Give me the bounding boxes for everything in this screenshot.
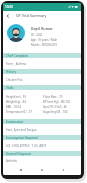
staticText: LDL CHOLESTROL, T-3G, ANTI — [6, 144, 46, 148]
button[interactable]: Back — [3, 11, 12, 20]
button[interactable]: Back — [59, 166, 67, 174]
staticText: BP (mm Hg) - 80/120 — [43, 100, 71, 104]
staticText: Face, Eyes and Tongue — [6, 128, 37, 132]
staticText: 10:30 — [5, 5, 13, 9]
staticText: GP Visit Summary — [16, 13, 47, 18]
staticText: Vitals — [6, 86, 14, 90]
staticText: Age : 35 years / Male — [31, 38, 58, 42]
button[interactable]: Chief Complaint — [3, 53, 81, 58]
staticText: Mobile : 9874563210 — [31, 43, 58, 47]
staticText: Sugar(mg/dl) - 100 — [43, 110, 68, 114]
button[interactable]: Investigation Required — [3, 135, 81, 140]
button[interactable]: Examination — [3, 119, 81, 124]
staticText: Weight(kg) - 84 — [6, 100, 26, 104]
staticText: General Diagnosis — [6, 152, 32, 156]
staticText: Pulse Rate - 70 — [43, 95, 63, 99]
button[interactable]: Home — [38, 166, 46, 174]
button[interactable]: History — [3, 69, 81, 74]
button[interactable]: Vitals — [3, 85, 81, 90]
staticText: Fever , Asthma — [6, 62, 27, 66]
staticText: History — [6, 70, 16, 74]
staticText: Chicken Pox — [6, 78, 23, 82]
staticText: Arthritis — [6, 159, 17, 163]
staticText: Spo2 (% 0 Vol) - 46 — [43, 105, 67, 109]
button[interactable]: General Diagnosis — [3, 151, 81, 156]
staticText: Investigation Required — [6, 136, 38, 140]
staticText: ID : 2342 — [31, 33, 43, 37]
staticText: Height(cm) - 55 — [6, 95, 27, 99]
button[interactable]: Recents — [17, 166, 25, 174]
staticText: BMI - 18.54 — [6, 105, 21, 109]
staticText: Temperature(C) - 37 — [6, 110, 32, 114]
staticText: Chief Complaint — [6, 54, 29, 58]
staticText: Examination — [6, 120, 24, 124]
staticText: Kapil Kumar — [31, 26, 53, 31]
